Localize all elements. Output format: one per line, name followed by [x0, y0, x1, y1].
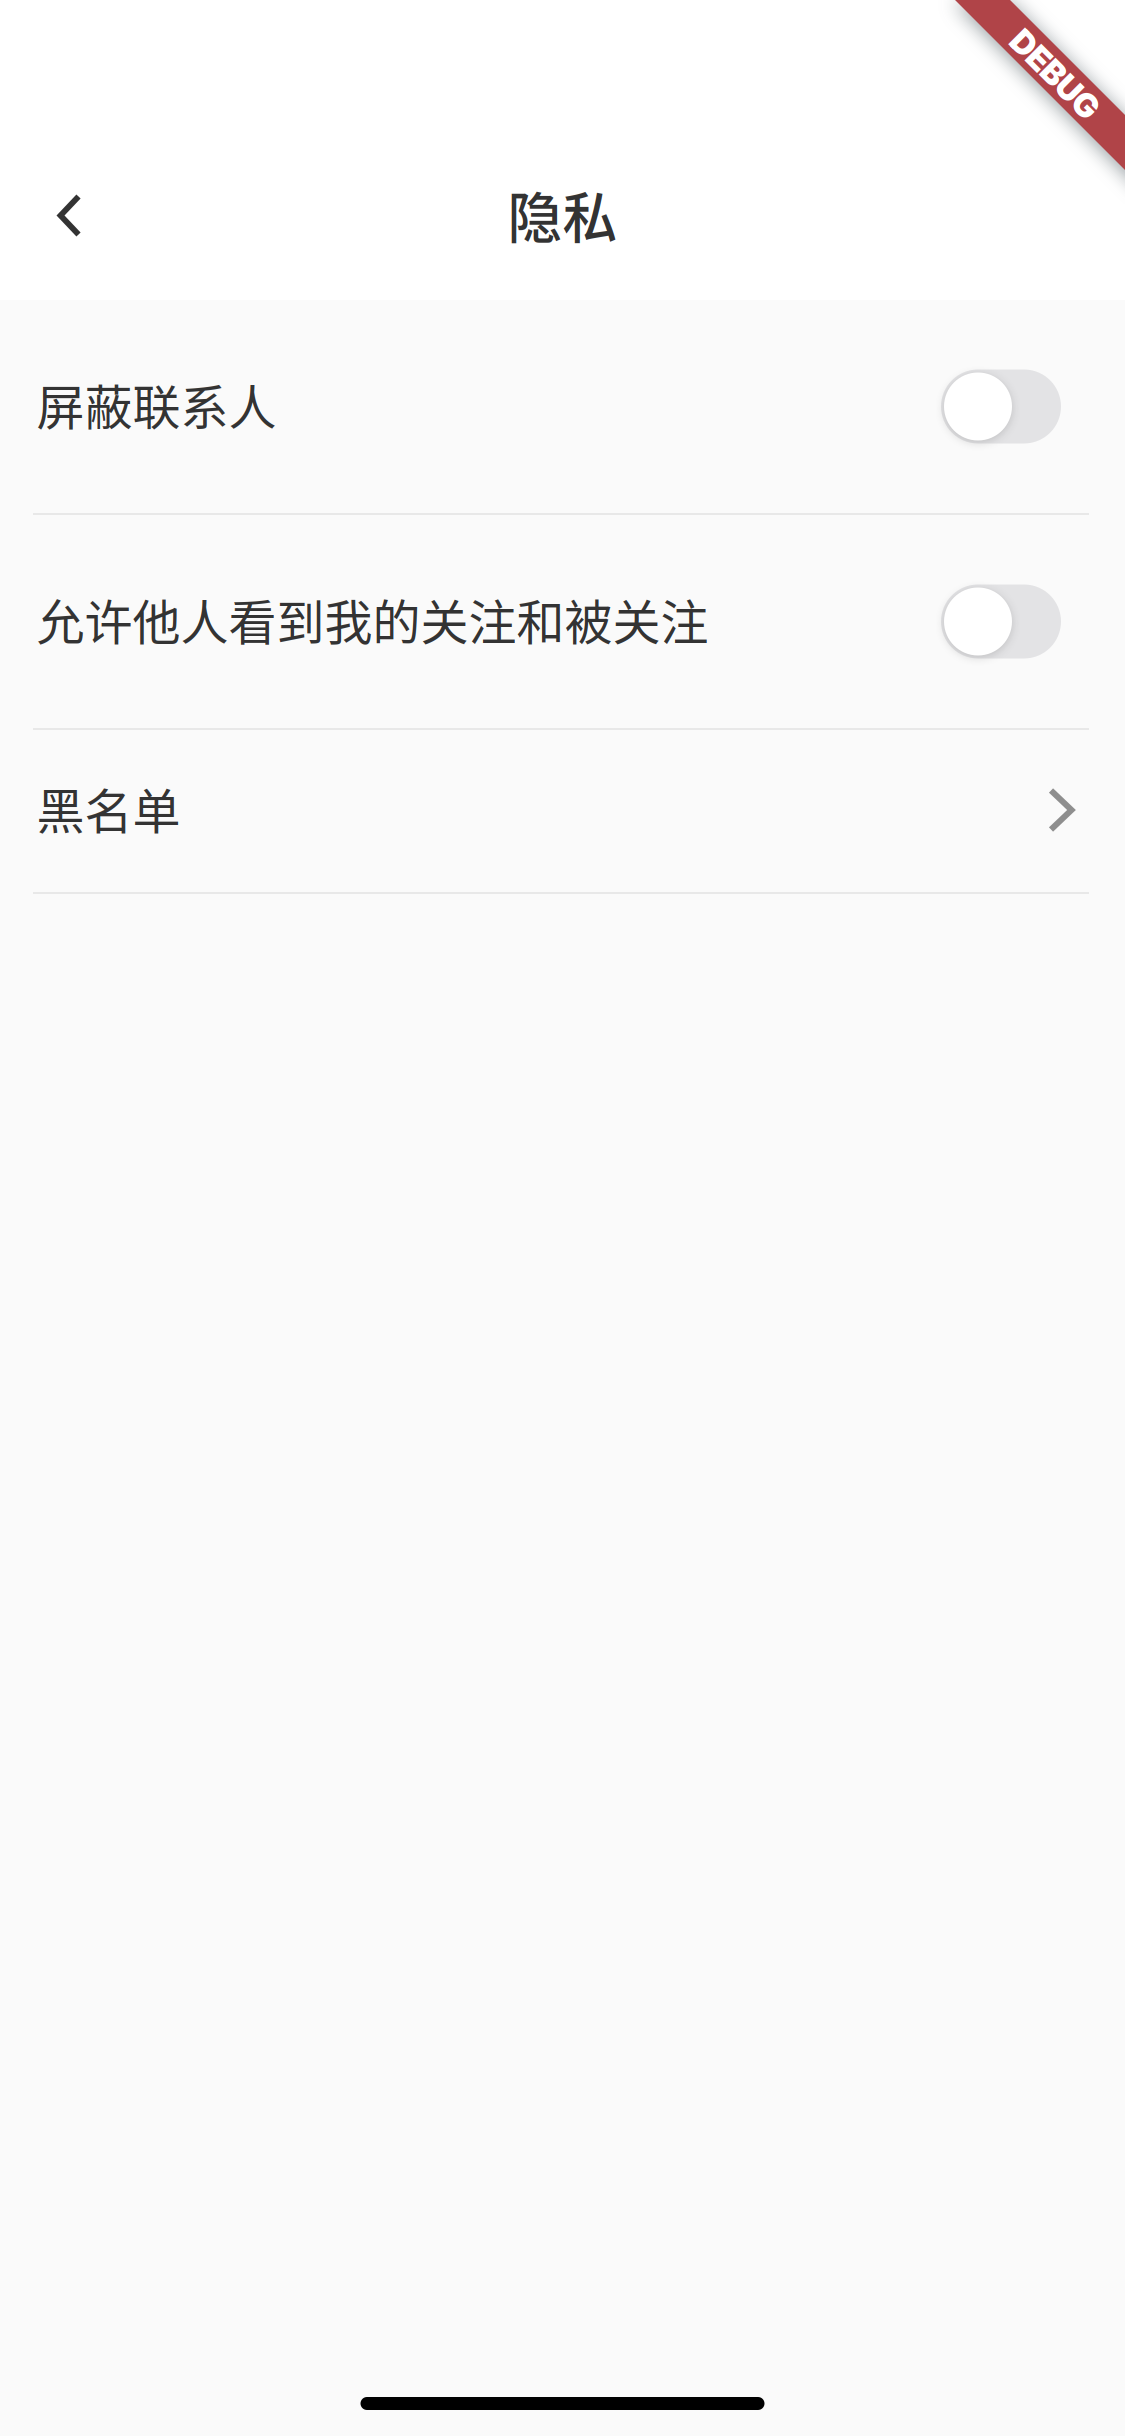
button[interactable]: 屏蔽联系人: [0, 300, 1125, 513]
staticText: 屏蔽联系人: [36, 369, 276, 439]
button[interactable]: 允许他人看到我的关注和被关注: [0, 515, 1125, 728]
button[interactable]: 返回: [6, 151, 134, 279]
staticText: DEBUG: [999, 54, 1110, 94]
button[interactable]: 黑名单: [0, 730, 1125, 892]
staticText: 允许他人看到我的关注和被关注: [36, 584, 708, 654]
staticText: 隐私: [507, 174, 617, 254]
staticText: 黑名单: [36, 773, 180, 843]
